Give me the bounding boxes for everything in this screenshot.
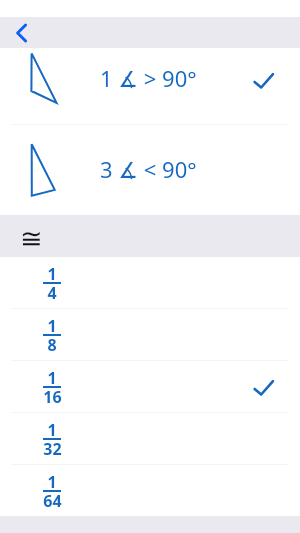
- staticText: 1: [47, 419, 57, 441]
- button[interactable]: Congruence section: [0, 215, 300, 257]
- staticText: 1: [47, 367, 57, 389]
- staticText: 8: [47, 334, 57, 356]
- staticText: 1: [47, 263, 57, 285]
- staticText: 1: [47, 471, 57, 493]
- button[interactable]: 1: [0, 465, 300, 516]
- staticText: 32: [43, 438, 62, 460]
- staticText: 1 ∡ > 90°: [100, 63, 197, 93]
- button[interactable]: 1: [0, 309, 300, 360]
- button[interactable]: 3 ∡ < 90°: [0, 125, 300, 215]
- button[interactable]: Back: [9, 22, 35, 46]
- button[interactable]: 1 ∡ > 90°: [0, 34, 300, 124]
- button[interactable]: 1: [0, 361, 300, 412]
- staticText: 3 ∡ < 90°: [100, 154, 197, 184]
- staticText: 4: [47, 282, 57, 304]
- button[interactable]: 1: [0, 413, 300, 464]
- button[interactable]: 1: [0, 257, 300, 308]
- staticText: 1: [47, 315, 57, 337]
- staticText: 64: [43, 490, 62, 512]
- staticText: 16: [43, 386, 62, 408]
- staticText: ≅: [20, 223, 43, 254]
